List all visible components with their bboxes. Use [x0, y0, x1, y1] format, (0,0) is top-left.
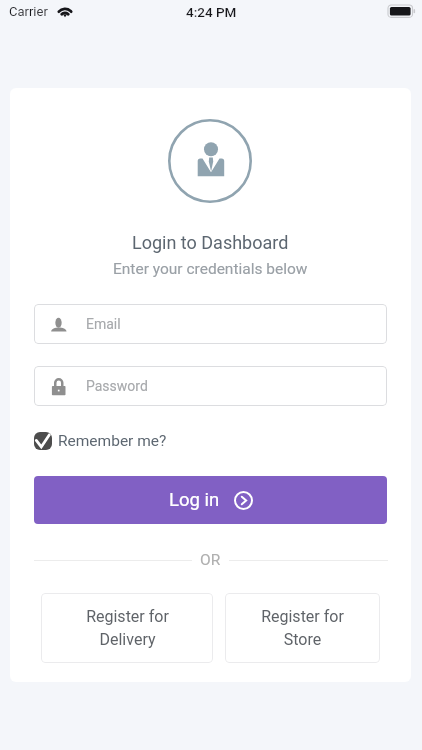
staticText: OR: [200, 551, 221, 569]
staticText: 4:24 PM: [186, 4, 237, 20]
button[interactable]: Password: [34, 366, 387, 406]
button[interactable]: Register for Store: [225, 593, 380, 663]
button[interactable]: Register for Delivery: [41, 593, 213, 663]
staticText: Remember me?: [58, 432, 167, 450]
button[interactable]: Log in: [34, 476, 387, 524]
staticText: Password: [86, 378, 148, 394]
staticText: Enter your credentials below: [113, 260, 308, 278]
button[interactable]: Email: [34, 304, 387, 344]
staticText: Register for Delivery: [86, 607, 169, 649]
staticText: Email: [86, 316, 121, 332]
staticText: Carrier: [9, 4, 48, 19]
button[interactable]: Remember me?: [34, 432, 167, 450]
staticText: Login to Dashboard: [132, 232, 289, 253]
staticText: Log in: [169, 489, 220, 511]
staticText: Register for Store: [261, 607, 344, 649]
